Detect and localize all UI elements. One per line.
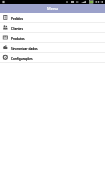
staticText: Produtos (11, 37, 25, 41)
staticText: Menu (47, 6, 58, 11)
staticText: Sincronizar dados (11, 47, 38, 51)
staticText: Clientes (11, 27, 23, 31)
staticText: Configurações (11, 57, 33, 61)
staticText: Produtos (11, 37, 25, 41)
button[interactable]: Clientes (0, 23, 105, 33)
staticText: Clientes (11, 27, 23, 31)
button[interactable]: Produtos (0, 33, 105, 43)
staticText: Pedidos (11, 17, 23, 21)
button[interactable]: Sincronizar dados (0, 43, 105, 53)
button[interactable]: Pedidos (0, 13, 105, 23)
staticText: Sincronizar dados (11, 47, 38, 51)
staticText: Pedidos (11, 17, 23, 21)
staticText: Configurações (11, 57, 33, 61)
staticText: Configurações (11, 57, 33, 61)
staticText: Produtos (11, 37, 25, 41)
staticText: Pedidos (11, 17, 23, 21)
staticText: Clientes (11, 27, 23, 31)
staticText: Sincronizar dados (11, 47, 38, 51)
button[interactable]: Configurações (0, 53, 105, 63)
